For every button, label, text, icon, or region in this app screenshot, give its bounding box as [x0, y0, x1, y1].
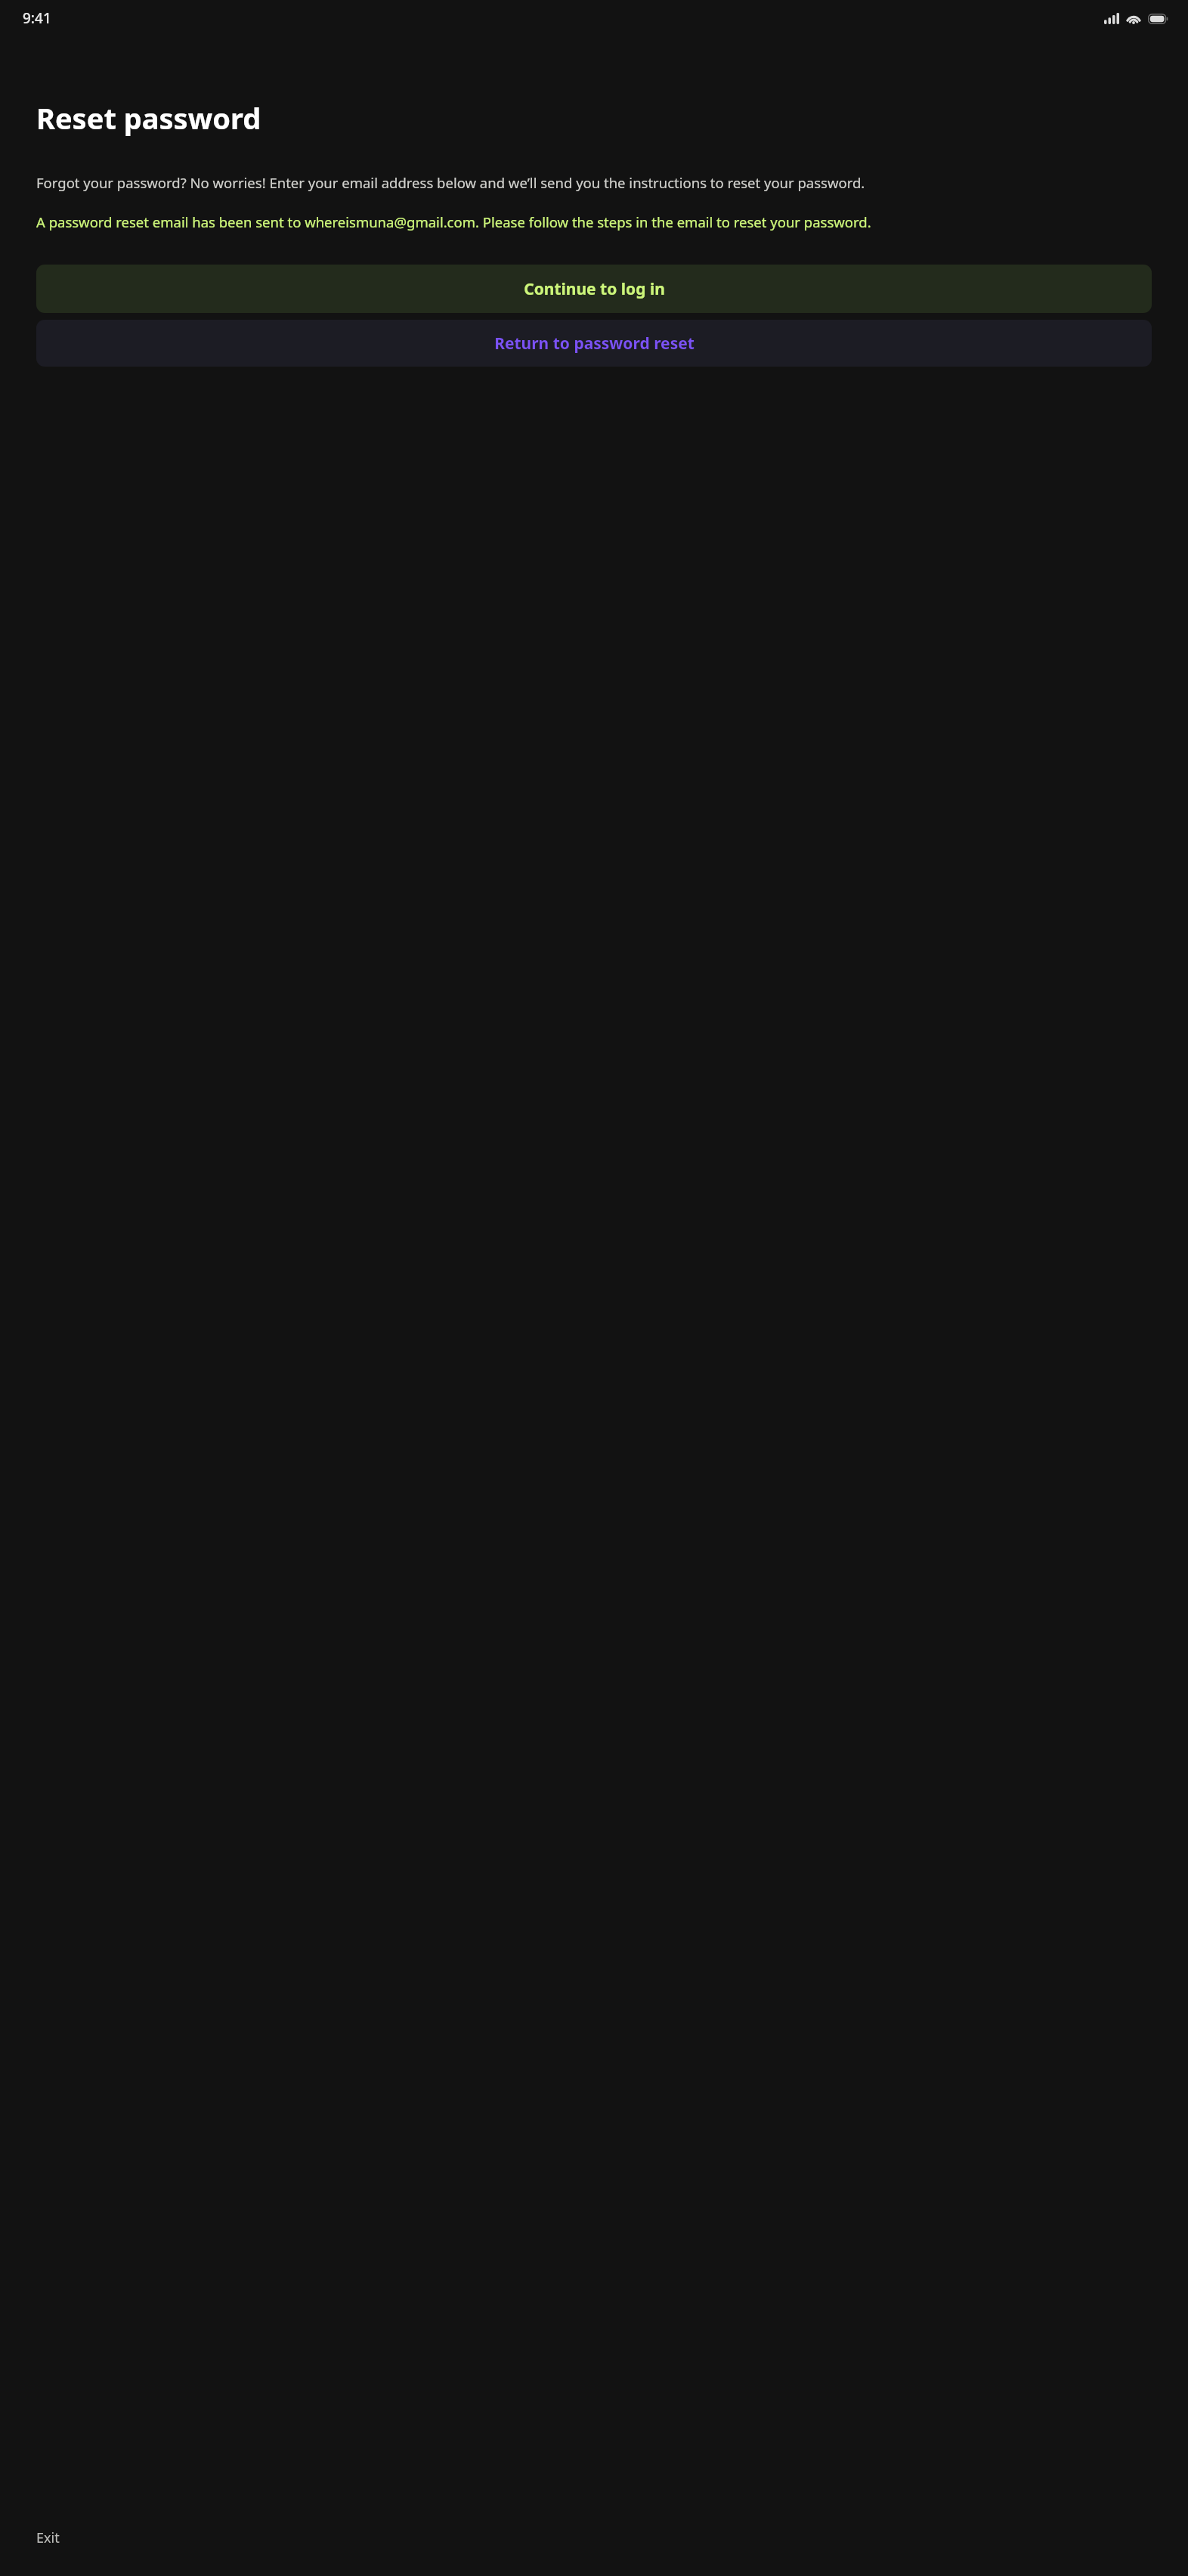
staticText: Reset password — [36, 98, 261, 138]
staticText: Continue to log in — [524, 278, 665, 300]
staticText: Exit — [36, 2528, 60, 2547]
other: Wi-Fi — [1126, 13, 1141, 24]
other: Cellular signal — [1104, 13, 1119, 24]
button[interactable]: Continue to log in — [36, 265, 1152, 313]
staticText: Forgot your password? No worries! Enter … — [36, 173, 865, 192]
staticText: A password reset email has been sent to … — [36, 212, 871, 231]
button[interactable]: Return to password reset — [36, 320, 1152, 367]
staticText: 9:41 — [23, 8, 51, 28]
other: Battery — [1148, 14, 1168, 24]
staticText: Return to password reset — [494, 333, 695, 355]
button[interactable]: Exit — [29, 2524, 67, 2552]
